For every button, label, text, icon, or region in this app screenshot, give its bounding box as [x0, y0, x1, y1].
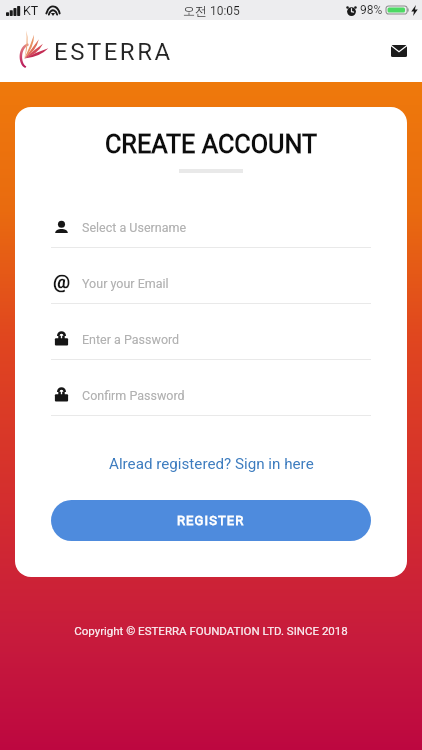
- button[interactable]: REGISTER: [51, 500, 371, 541]
- button[interactable]: Select a Username: [51, 212, 371, 248]
- staticText: @: [53, 270, 71, 292]
- staticText: Alread registered? Sign in here: [109, 455, 314, 473]
- button[interactable]: Alread registered? Sign in here: [15, 450, 407, 478]
- button[interactable]: Confirm Password: [51, 380, 371, 416]
- staticText: KT: [23, 3, 39, 18]
- staticText: 오전 10:05: [183, 3, 240, 18]
- staticText: Your your Email: [82, 276, 169, 291]
- staticText: Confirm Password: [82, 388, 185, 403]
- staticText: ESTERRA: [54, 38, 173, 66]
- staticText: CREATE ACCOUNT: [15, 130, 407, 160]
- staticText: Copyright © ESTERRA FOUNDATION LTD. SINC…: [0, 624, 422, 637]
- button[interactable]: Messages: [384, 36, 414, 66]
- staticText: 98%: [360, 3, 383, 17]
- staticText: Enter a Password: [82, 332, 180, 347]
- button[interactable]: @: [51, 268, 371, 304]
- button[interactable]: Enter a Password: [51, 324, 371, 360]
- staticText: REGISTER: [177, 513, 245, 528]
- staticText: Select a Username: [82, 220, 187, 235]
